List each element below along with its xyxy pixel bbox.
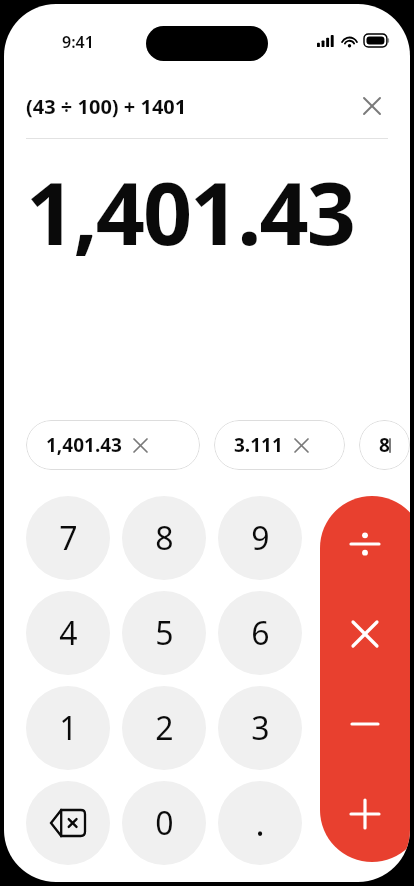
button[interactable]: 3.111 xyxy=(214,420,345,470)
button[interactable]: 1 xyxy=(26,686,110,770)
button[interactable]: 9 xyxy=(218,496,302,580)
button[interactable]: 0 xyxy=(122,781,206,865)
staticText: (43 ÷ 100) + 1401 xyxy=(26,93,352,120)
button[interactable]: . xyxy=(218,781,302,865)
button[interactable]: 8.25 xyxy=(359,420,410,470)
button[interactable]: 7 xyxy=(26,496,110,580)
staticText: 8.25 xyxy=(379,432,390,458)
staticText: 3 xyxy=(251,706,270,750)
staticText: 1,401.43 xyxy=(26,153,354,270)
button[interactable]: Clear expression xyxy=(352,86,392,126)
staticText: 3.111 xyxy=(234,432,283,458)
button[interactable]: 3 xyxy=(218,686,302,770)
button[interactable]: 1,401.43 xyxy=(26,420,200,470)
staticText: 4 xyxy=(59,611,78,655)
staticText: 9:41 xyxy=(62,31,94,53)
button[interactable]: 6 xyxy=(218,591,302,675)
staticText: . xyxy=(255,800,265,846)
staticText: 8 xyxy=(155,516,174,560)
button[interactable]: 2 xyxy=(122,686,206,770)
staticText: 1 xyxy=(59,706,78,750)
staticText: 9 xyxy=(251,516,270,560)
staticText: 5 xyxy=(155,611,174,655)
staticText: 2 xyxy=(155,706,174,750)
button[interactable] xyxy=(320,502,410,586)
staticText: 6 xyxy=(251,611,270,655)
button[interactable]: 5 xyxy=(122,591,206,675)
button[interactable]: 8 xyxy=(122,496,206,580)
button[interactable] xyxy=(320,772,410,856)
button[interactable] xyxy=(320,592,410,676)
button[interactable] xyxy=(320,682,410,766)
staticText: 7 xyxy=(59,516,78,560)
button[interactable]: Backspace xyxy=(26,781,110,865)
staticText: 0 xyxy=(155,801,174,845)
staticText: 1,401.43 xyxy=(46,432,122,458)
button[interactable]: 4 xyxy=(26,591,110,675)
